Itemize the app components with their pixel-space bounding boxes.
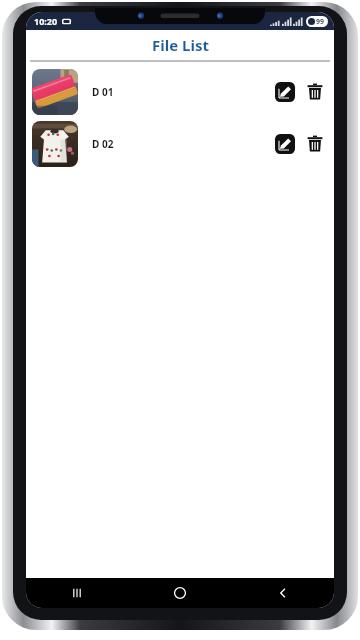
staticText: 99 (316, 17, 325, 27)
staticText: File List (152, 35, 209, 55)
button[interactable]: Back (231, 578, 334, 608)
staticText: D 01 (92, 85, 114, 99)
staticText: D 02 (92, 137, 114, 151)
button[interactable]: Recents (26, 578, 128, 608)
staticText: 10:20 (34, 15, 58, 27)
button[interactable]: Edit (274, 133, 296, 155)
button[interactable]: Delete (304, 81, 326, 103)
button[interactable]: Delete (304, 133, 326, 155)
button[interactable]: Home (128, 578, 231, 608)
button[interactable]: Edit (274, 81, 296, 103)
button[interactable]: D 02 (26, 118, 334, 170)
button[interactable]: D 01 (26, 66, 334, 118)
